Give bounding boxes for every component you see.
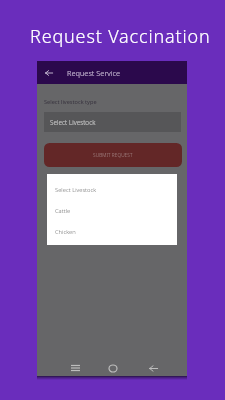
staticText: Select livestock type <box>44 98 97 106</box>
staticText: Cattle <box>55 207 71 215</box>
staticText: Select Livestock <box>50 118 96 127</box>
button[interactable]: Home <box>101 354 125 382</box>
staticText: Request Vaccination <box>30 24 211 49</box>
button[interactable]: Back <box>141 354 165 382</box>
button[interactable]: Navigate up <box>42 66 56 80</box>
button[interactable]: Cattle <box>47 200 177 221</box>
staticText: SUBMIT REQUEST <box>93 152 133 158</box>
button[interactable]: Chicken <box>47 221 177 242</box>
staticText: Select Livestock <box>55 186 97 194</box>
staticText: Request Service <box>67 68 121 78</box>
staticText: Chicken <box>55 228 76 236</box>
button[interactable]: Select Livestock <box>44 112 181 132</box>
button[interactable]: Recent apps <box>63 354 87 382</box>
button[interactable]: SUBMIT REQUEST <box>44 143 182 167</box>
button[interactable]: Select Livestock <box>47 179 177 200</box>
